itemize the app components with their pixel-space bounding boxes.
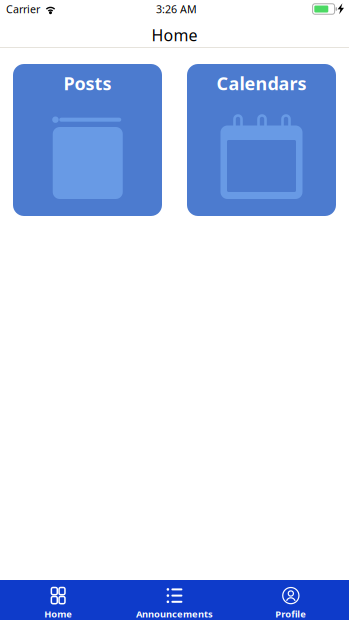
staticText: Home — [151, 24, 197, 46]
button[interactable]: Home — [0, 580, 116, 620]
button[interactable]: Posts — [13, 64, 162, 216]
button[interactable]: Profile — [233, 580, 349, 620]
staticText: 3:26 AM — [156, 2, 197, 16]
button[interactable]: Announcements — [116, 580, 233, 620]
staticText: Carrier — [6, 2, 40, 16]
button[interactable]: Calendars — [187, 64, 336, 216]
staticText: Home — [44, 608, 72, 620]
staticText: Calendars — [216, 71, 306, 95]
staticText: Posts — [63, 71, 111, 95]
staticText: Profile — [275, 608, 306, 620]
staticText: Announcements — [136, 608, 213, 620]
